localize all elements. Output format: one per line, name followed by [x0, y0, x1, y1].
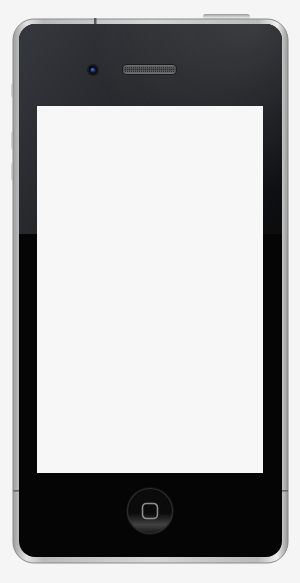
button[interactable]: iPhone device mockup — [0, 0, 300, 583]
